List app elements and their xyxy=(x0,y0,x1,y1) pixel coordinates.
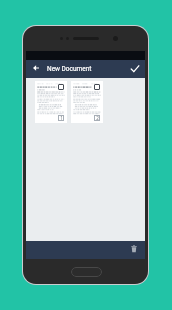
staticText: 1 xyxy=(60,115,63,121)
button[interactable]: Back xyxy=(31,63,44,76)
button[interactable]: Delete xyxy=(128,243,142,257)
staticText: New Document xyxy=(47,65,92,73)
button[interactable]: 1 xyxy=(35,81,67,123)
button[interactable]: Done xyxy=(127,61,143,77)
staticText: 2 xyxy=(96,115,99,121)
button[interactable]: 2 xyxy=(71,81,103,123)
